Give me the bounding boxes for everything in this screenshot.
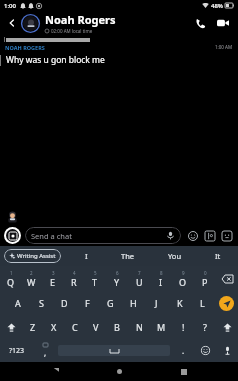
staticText: F: [85, 297, 90, 309]
button[interactable]: 1: [0, 266, 21, 291]
button[interactable]: V: [85, 315, 106, 339]
button[interactable]: 2: [21, 266, 42, 291]
other: Voice message: [166, 231, 175, 240]
staticText: 1: [10, 270, 13, 276]
staticText: N: [136, 321, 143, 333]
staticText: 1:00: [4, 2, 16, 10]
button[interactable]: Voice call: [190, 13, 210, 33]
staticText: I: [159, 276, 163, 288]
button[interactable]: N: [128, 315, 150, 339]
button[interactable]: 7: [128, 266, 150, 291]
button[interactable]: K: [168, 291, 191, 315]
staticText: Y: [114, 276, 120, 288]
staticText: 4: [73, 270, 76, 276]
button[interactable]: Writing Assist: [4, 249, 61, 263]
staticText: Noah Rogers: [45, 12, 116, 27]
staticText: P: [202, 276, 208, 288]
button[interactable]: 5: [84, 266, 106, 291]
button[interactable]: Space: [58, 345, 170, 356]
button[interactable]: F: [76, 291, 99, 315]
button[interactable]: Z: [22, 315, 43, 339]
button[interactable]: G: [99, 291, 122, 315]
staticText: J: [155, 297, 158, 309]
staticText: U: [136, 276, 143, 288]
button[interactable]: Recent apps: [174, 362, 194, 381]
staticText: C: [72, 321, 78, 333]
button[interactable]: Profile: [21, 14, 40, 33]
button[interactable]: Period: [172, 339, 194, 362]
staticText: B: [114, 321, 120, 333]
button[interactable]: Why was u gon block me: [0, 54, 238, 66]
button[interactable]: J: [145, 291, 168, 315]
staticText: Send a chat: [31, 231, 72, 241]
staticText: It: [215, 251, 221, 261]
staticText: G: [107, 297, 114, 309]
staticText: You: [168, 251, 182, 261]
staticText: ?123: [9, 346, 25, 356]
staticText: 6: [116, 270, 119, 276]
button[interactable]: 8: [150, 266, 172, 291]
staticText: 1:00 AM: [215, 44, 233, 50]
button[interactable]: Back: [45, 362, 65, 381]
staticText: Why was u gon block me: [6, 54, 105, 66]
button[interactable]: H: [122, 291, 145, 315]
button[interactable]: X: [43, 315, 64, 339]
staticText: Z: [30, 321, 36, 333]
button[interactable]: M: [150, 315, 172, 339]
button[interactable]: S: [30, 291, 53, 315]
staticText: 3: [52, 270, 55, 276]
staticText: .: [182, 345, 185, 356]
staticText: I: [85, 251, 88, 261]
button[interactable]: Backspace: [216, 266, 238, 291]
staticText: S: [39, 297, 44, 309]
button[interactable]: Voice input: [216, 339, 238, 362]
staticText: X: [51, 321, 57, 333]
staticText: ,: [44, 347, 47, 358]
button[interactable]: Shift: [0, 315, 22, 339]
button[interactable]: B: [106, 315, 128, 339]
button[interactable]: Back: [5, 16, 19, 30]
button[interactable]: !: [172, 315, 194, 339]
button[interactable]: ?123: [0, 339, 34, 362]
button[interactable]: Send a chat: [25, 227, 181, 244]
button[interactable]: Send: [214, 291, 238, 315]
staticText: T: [92, 276, 98, 288]
staticText: Writing Assist: [17, 252, 56, 260]
button[interactable]: Home: [109, 362, 129, 381]
staticText: 8: [160, 270, 163, 276]
button[interactable]: 3: [42, 266, 63, 291]
staticText: 02:00 AM local time: [51, 28, 93, 34]
button[interactable]: Emoji: [185, 228, 200, 243]
button[interactable]: D: [53, 291, 76, 315]
staticText: R: [71, 276, 77, 288]
staticText: ?: [203, 321, 207, 333]
button[interactable]: A: [6, 291, 30, 315]
button[interactable]: Stickers: [202, 228, 217, 243]
button[interactable]: GIFs: [219, 228, 234, 243]
button[interactable]: 4: [63, 266, 84, 291]
button[interactable]: Shift: [216, 315, 238, 339]
staticText: !: [182, 321, 185, 333]
staticText: NOAH ROGERS: [5, 44, 45, 51]
button[interactable]: 0: [194, 266, 216, 291]
button[interactable]: Comma: [34, 339, 56, 362]
staticText: D: [61, 297, 68, 309]
button[interactable]: C: [64, 315, 85, 339]
staticText: O: [179, 276, 187, 288]
button[interactable]: 9: [172, 266, 194, 291]
staticText: 48%: [211, 2, 223, 10]
staticText: A: [15, 297, 21, 309]
staticText: 9: [182, 270, 185, 276]
button[interactable]: Emoji keyboard: [194, 339, 216, 362]
staticText: K: [177, 297, 183, 309]
button[interactable]: 6: [106, 266, 128, 291]
button[interactable]: Camera: [4, 227, 21, 244]
button[interactable]: L: [191, 291, 214, 315]
staticText: Q: [7, 276, 15, 288]
staticText: 2: [30, 270, 33, 276]
button[interactable]: Video call: [213, 13, 233, 33]
staticText: W: [27, 276, 36, 288]
staticText: 5: [94, 270, 97, 276]
button[interactable]: ?: [194, 315, 216, 339]
staticText: M: [157, 321, 166, 333]
